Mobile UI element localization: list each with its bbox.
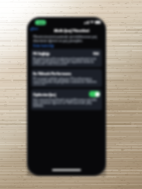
button[interactable]: Pil Sağlığı <box>31 49 102 67</box>
staticText: En Yüksek Performans <box>33 71 72 76</box>
staticText: Geri <box>32 27 39 31</box>
staticText: Optimize Şarj <box>33 92 56 97</box>
staticText: %94 <box>93 52 100 56</box>
staticText: Akıllı Şarj Yönetimi <box>54 28 90 33</box>
button[interactable]: Optimize Şarj anahtarı <box>89 91 100 97</box>
staticText: Pil normal şekilde çalışıyor. Pil perfor… <box>33 77 100 85</box>
staticText: Pil Sağlığı <box>33 51 50 56</box>
staticText: Bu gösterge pilin maksimum kapasitesini … <box>33 57 100 65</box>
button[interactable]: Optimize Şarj <box>31 89 102 110</box>
button[interactable]: Geri <box>30 27 39 31</box>
staticText: Pilinizin ömrünü uzatmak için telefonunu… <box>33 35 101 43</box>
staticText: Şarj süresini kısaltmak için telefonunuz… <box>33 98 100 108</box>
button[interactable]: En Yüksek Performans <box>31 69 102 87</box>
staticText: Daha fazla bilgi <box>33 44 55 48</box>
